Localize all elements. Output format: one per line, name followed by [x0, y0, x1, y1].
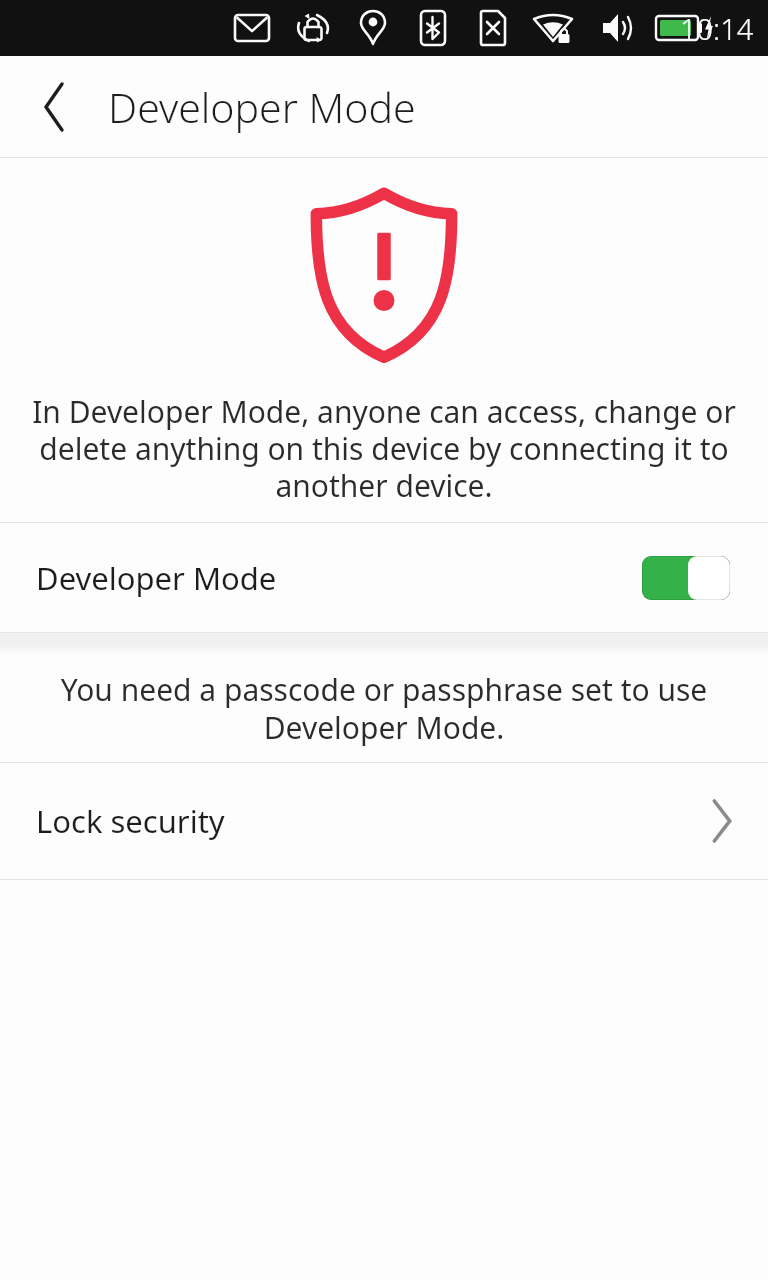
button[interactable]: Developer Mode switch, on	[642, 556, 730, 600]
button[interactable]: Back	[26, 79, 82, 135]
staticText: You need a passcode or passphrase set to…	[30, 669, 738, 748]
staticText: In Developer Mode, anyone can access, ch…	[24, 391, 744, 506]
staticText: Lock security	[36, 800, 225, 842]
staticText: 10:14	[680, 9, 754, 48]
staticText: Developer Mode	[108, 79, 416, 135]
staticText: Developer Mode	[36, 557, 277, 599]
button[interactable]: Lock security	[0, 763, 768, 879]
button[interactable]: Developer Mode	[0, 523, 768, 632]
